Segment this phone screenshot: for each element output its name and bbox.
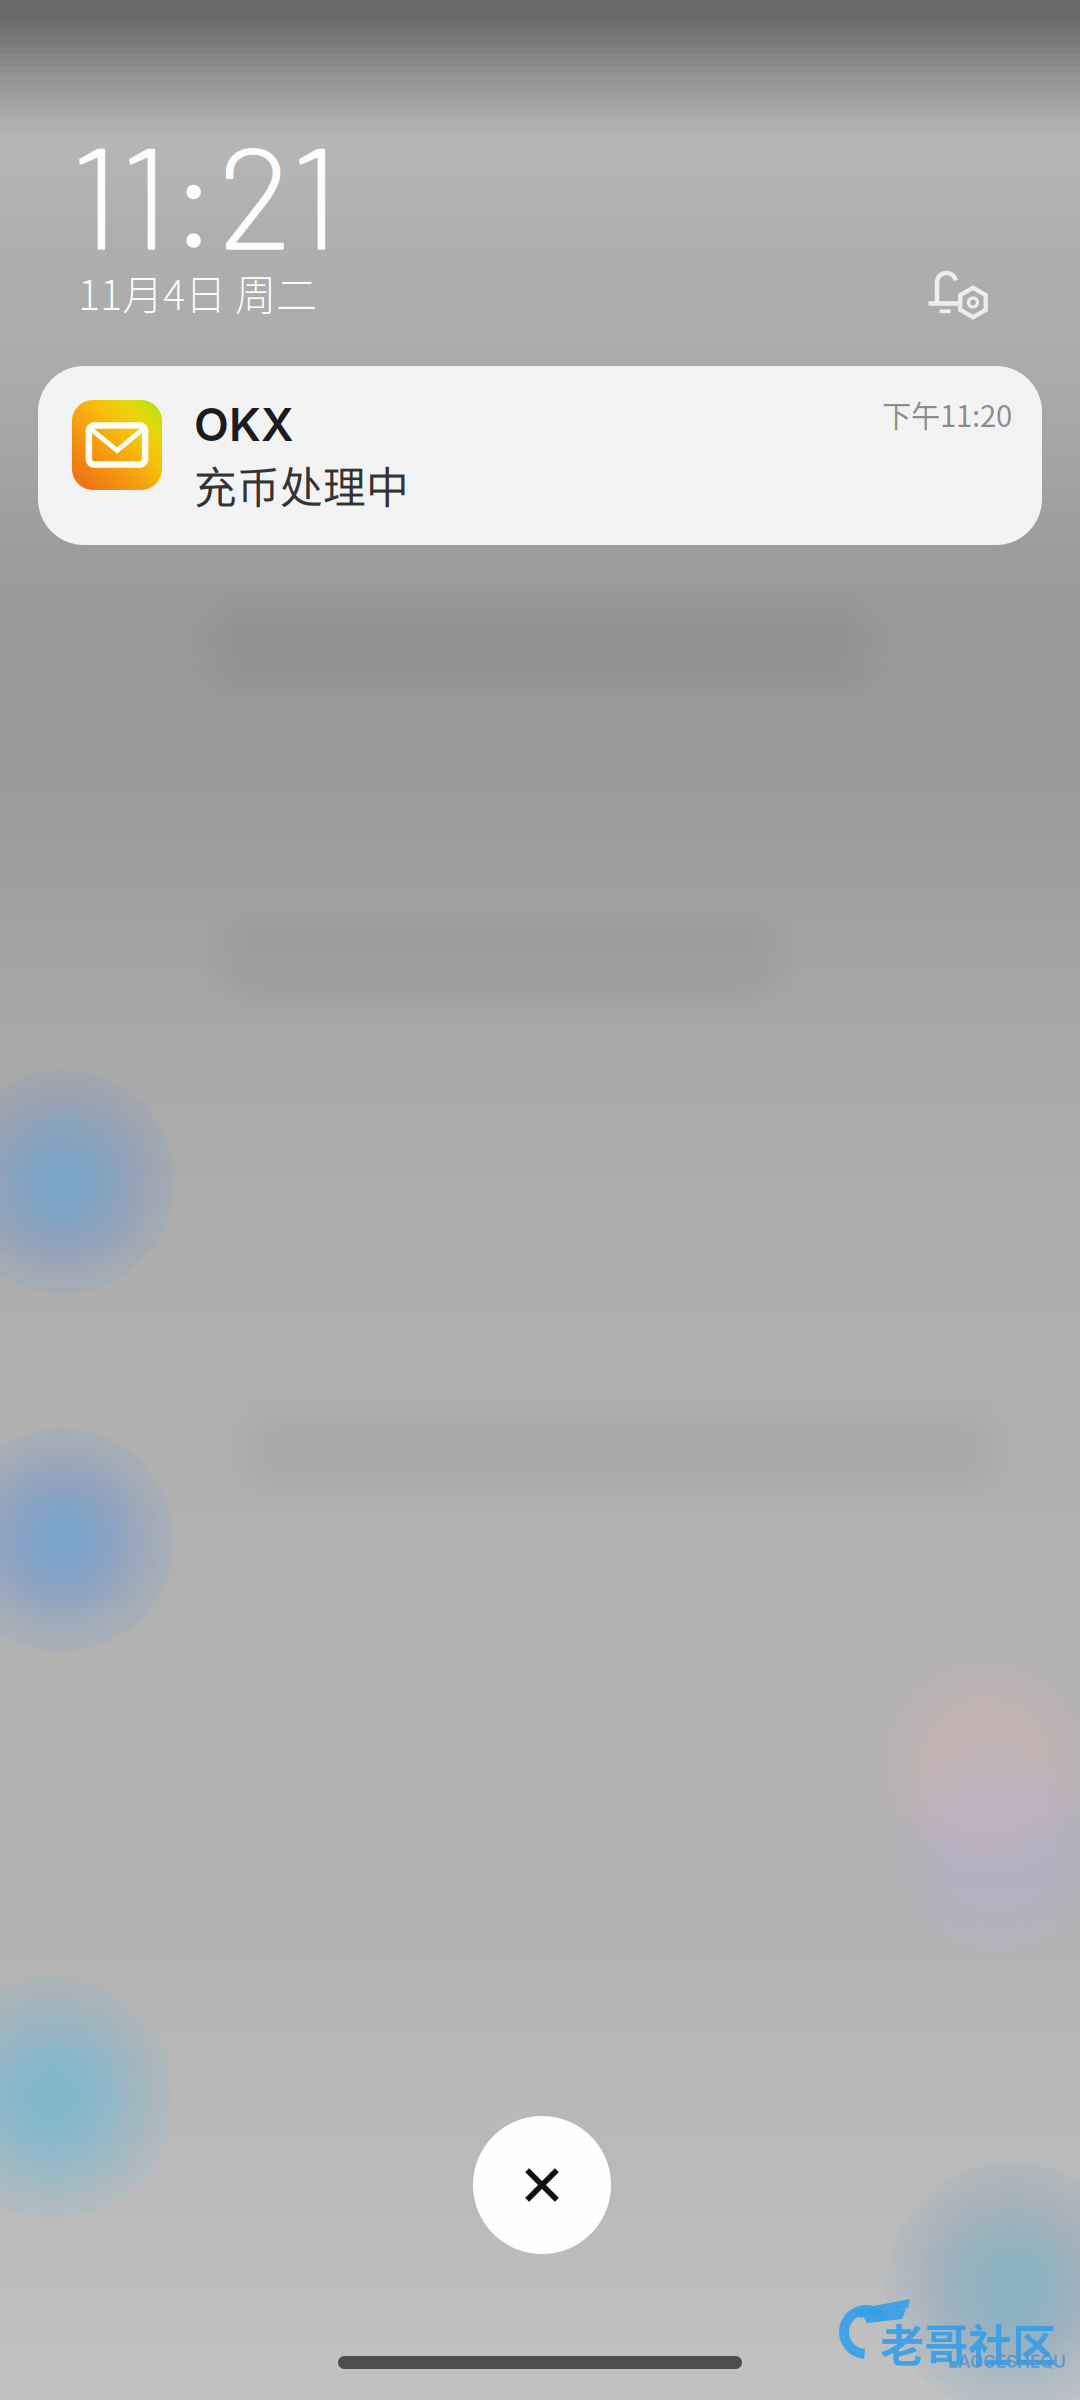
staticText: 11月4日 周二 [78,262,317,322]
staticText: 下午11:20 [882,393,1012,435]
button[interactable]: Dismiss notifications [473,2116,611,2254]
staticText: 充币处理中 [194,454,409,516]
staticText: 老哥社区 [880,2311,1056,2375]
staticText: LAOGESHEQU [948,2351,1066,2372]
button[interactable]: Notification settings [910,247,1008,339]
staticText: 11:21 [70,107,340,278]
staticText: OKX [194,397,294,452]
button[interactable]: OKX [38,366,1042,545]
